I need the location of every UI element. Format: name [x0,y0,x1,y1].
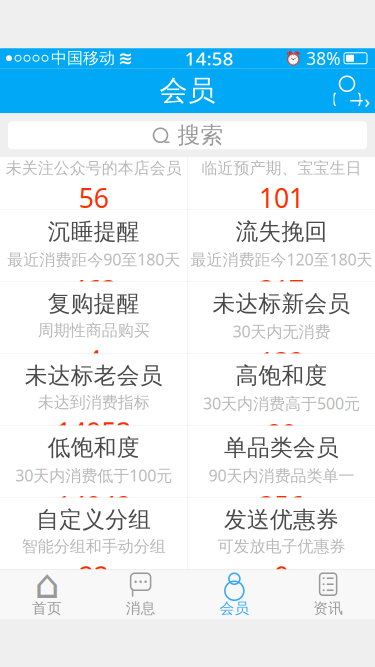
button[interactable]: 会员 [187,570,281,619]
button[interactable]: 搜索 [8,121,367,149]
staticText: 会员 [159,74,215,108]
staticText: 未关注公众号的本店会员 [6,158,182,178]
staticText: 临近预产期、宝宝生日 [201,158,361,178]
staticText: 低饱和度 [48,434,140,462]
button[interactable]: 临近预产期、宝宝生日 [188,157,375,209]
staticText: 101 [259,180,304,215]
staticText: 复购提醒 [48,290,140,318]
staticText: 会员 [219,599,249,617]
staticText: 14953 [56,414,131,450]
staticText: 22 [79,558,109,594]
staticText: 搜索 [177,121,223,149]
staticText: 356 [259,488,304,523]
staticText: 流失挽回 [235,218,327,246]
staticText: 未达到消费指标 [38,393,150,412]
staticText: 资讯 [313,599,343,617]
staticText: 80 [266,416,296,451]
button[interactable]: 自定义分组 [0,498,187,569]
staticText: 56 [79,180,109,215]
staticText: 单品类会员 [224,434,339,462]
staticText: 发送优惠券 [224,506,339,534]
staticText: 高饱和度 [235,362,327,390]
staticText: 132 [259,344,304,379]
staticText: 最近消费距今120至180天 [190,249,372,270]
staticText: › [364,88,370,113]
staticText: 4 [86,342,101,378]
button[interactable]: 复购提醒 [0,282,187,353]
staticText: 自定义分组 [36,506,151,534]
button[interactable]: ⌂ [0,570,94,619]
button[interactable]: 未关注公众号的本店会员 [0,157,187,209]
staticText: 317 [259,272,304,307]
staticText: 14:58 [184,46,233,71]
staticText: 30天内消费低于100元 [15,465,172,486]
button[interactable]: 资讯 [281,570,375,619]
staticText: 90天内消费品类单一 [208,465,354,486]
button[interactable]: 沉睡提醒 [0,210,187,281]
button[interactable]: 发送优惠券 [188,498,375,569]
button[interactable]: 流失挽回 [188,210,375,281]
staticText: 可发放电子优惠券 [217,537,345,556]
staticText: 智能分组和手动分组 [22,537,166,556]
staticText: 38% [306,47,340,70]
staticText: ⌂ [34,561,59,607]
button[interactable]: 未达标新会员 [188,282,375,353]
staticText: 中国移动 [51,48,115,68]
button[interactable]: 消息 [94,570,188,619]
button[interactable]: 低饱和度 [0,426,187,497]
staticText: 周期性商品购买 [38,321,150,340]
staticText: 0 [274,558,289,594]
staticText: 最近消费距今90至180天 [7,249,180,270]
staticText: ⏰ [285,51,302,66]
staticText: 14942 [56,488,131,523]
staticText: 463 [71,272,116,307]
staticText: 30天内无消费 [232,321,330,342]
staticText: 首页 [32,599,62,617]
button[interactable]: 高饱和度 [188,354,375,425]
button[interactable]: 会员登记 [325,69,369,113]
staticText: 消息 [126,599,156,617]
staticText: ≋ [118,48,133,68]
staticText: 未达标老会员 [25,362,163,390]
staticText: 未达标新会员 [212,290,350,318]
staticText: 沉睡提醒 [48,218,140,246]
button[interactable]: 单品类会员 [188,426,375,497]
staticText: 30天内消费高于500元 [203,393,360,414]
button[interactable]: 未达标老会员 [0,354,187,425]
